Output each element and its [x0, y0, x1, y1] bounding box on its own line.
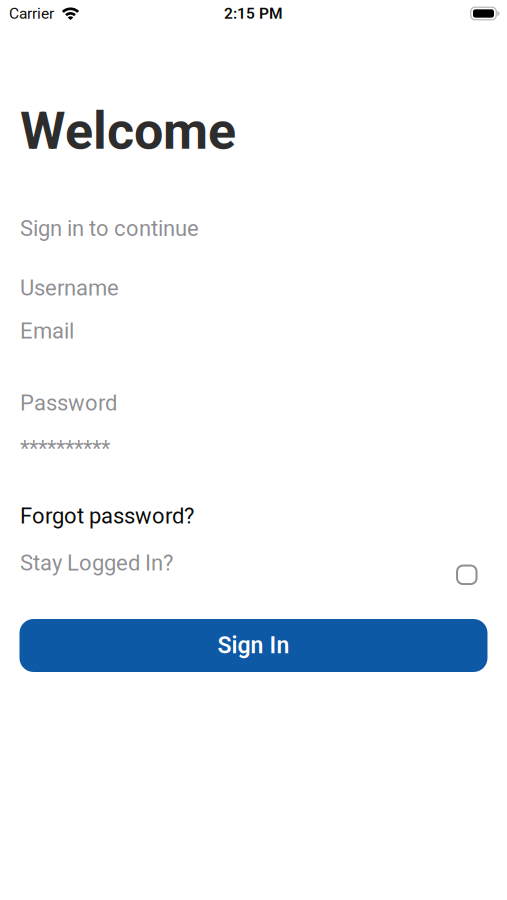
staticText: Carrier — [9, 4, 54, 23]
staticText: Forgot password? — [20, 503, 194, 529]
staticText: 2:15 PM — [224, 4, 283, 23]
staticText: Stay Logged In? — [20, 550, 173, 576]
staticText: Sign In — [217, 632, 289, 659]
staticText: Password — [20, 390, 117, 416]
button[interactable]: Sign In — [19, 619, 487, 672]
staticText: Welcome — [20, 100, 236, 161]
button[interactable]: Stay Logged In — [457, 565, 477, 584]
staticText: Username — [20, 275, 119, 301]
staticText: Email — [20, 318, 74, 344]
button[interactable]: Forgot password? — [20, 503, 194, 529]
staticText: ********** — [20, 436, 110, 461]
staticText: Sign in to continue — [20, 216, 199, 241]
